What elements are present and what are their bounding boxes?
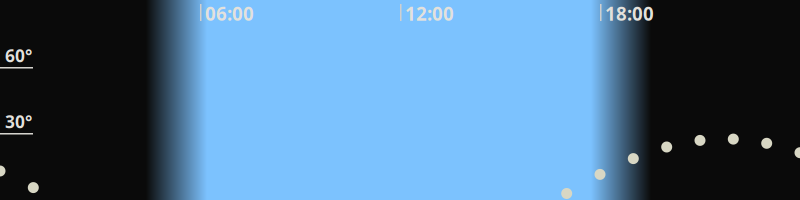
staticText: 18:00 [605, 1, 654, 26]
staticText: 06:00 [205, 1, 254, 26]
staticText: 60° [5, 44, 32, 67]
staticText: 30° [5, 110, 32, 133]
staticText: 12:00 [405, 1, 454, 26]
button[interactable]: Moon elevation chart [0, 0, 800, 200]
